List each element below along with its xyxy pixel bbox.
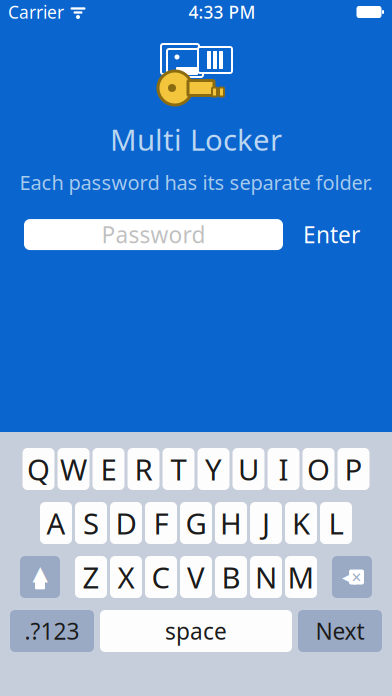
button[interactable]: M xyxy=(285,556,317,598)
button[interactable]: Z xyxy=(75,556,107,598)
staticText: .?123 xyxy=(24,616,79,646)
staticText: Z xyxy=(82,557,99,596)
staticText: Enter xyxy=(303,219,360,250)
staticText: M xyxy=(287,557,314,596)
button[interactable]: D xyxy=(110,502,142,544)
button[interactable]: H xyxy=(215,502,247,544)
button[interactable]: E xyxy=(92,448,124,490)
button[interactable]: A xyxy=(40,502,72,544)
button[interactable]: Next xyxy=(298,610,382,652)
staticText: R xyxy=(134,449,152,488)
button[interactable]: Enter xyxy=(297,213,366,256)
button[interactable]: T xyxy=(162,448,194,490)
button[interactable]: X xyxy=(110,556,142,598)
staticText: F xyxy=(153,503,168,542)
button[interactable]: Shift xyxy=(20,556,60,598)
staticText: X xyxy=(117,557,134,596)
button[interactable]: U xyxy=(232,448,264,490)
button[interactable]: space xyxy=(100,610,292,652)
button[interactable]: W xyxy=(57,448,89,490)
staticText: C xyxy=(151,557,170,596)
button[interactable]: Delete xyxy=(332,556,372,598)
staticText: Carrier xyxy=(8,0,64,23)
staticText: U xyxy=(238,449,259,488)
button[interactable]: Y xyxy=(197,448,229,490)
staticText: E xyxy=(100,449,116,488)
button[interactable]: I xyxy=(267,448,299,490)
button[interactable]: S xyxy=(75,502,107,544)
button[interactable]: J xyxy=(250,502,282,544)
staticText: Next xyxy=(315,616,364,646)
button[interactable]: P xyxy=(337,448,369,490)
button[interactable]: F xyxy=(145,502,177,544)
staticText: D xyxy=(115,503,136,542)
button[interactable]: C xyxy=(145,556,177,598)
staticText: Password xyxy=(101,219,205,250)
button[interactable]: V xyxy=(180,556,212,598)
staticText: B xyxy=(221,557,240,596)
staticText: K xyxy=(292,503,310,542)
button[interactable]: Q xyxy=(22,448,54,490)
staticText: P xyxy=(344,449,362,488)
staticText: O xyxy=(307,449,330,488)
staticText: Each password has its separate folder. xyxy=(19,169,372,196)
staticText: V xyxy=(187,557,205,596)
staticText: L xyxy=(328,503,343,542)
staticText: I xyxy=(278,449,288,488)
staticText: 4:33 PM xyxy=(188,0,255,23)
button[interactable]: L xyxy=(320,502,352,544)
button[interactable]: G xyxy=(180,502,212,544)
staticText: T xyxy=(170,449,186,488)
staticText: N xyxy=(255,557,277,596)
staticText: J xyxy=(262,503,270,542)
staticText: S xyxy=(83,503,99,542)
button[interactable]: B xyxy=(215,556,247,598)
staticText: A xyxy=(46,503,65,542)
staticText: Y xyxy=(205,449,222,488)
button[interactable]: R xyxy=(127,448,159,490)
staticText: space xyxy=(165,616,227,646)
staticText: Q xyxy=(27,449,50,488)
button[interactable]: .?123 xyxy=(10,610,94,652)
staticText: ▲ xyxy=(32,562,47,584)
button[interactable]: N xyxy=(250,556,282,598)
button[interactable]: O xyxy=(302,448,334,490)
button[interactable]: K xyxy=(285,502,317,544)
staticText: G xyxy=(185,503,206,542)
staticText: ◀ xyxy=(342,567,355,587)
staticText: Multi Locker xyxy=(110,120,282,159)
button[interactable]: Password xyxy=(24,219,283,250)
staticText: × xyxy=(351,565,361,588)
staticText: W xyxy=(60,449,87,488)
staticText: H xyxy=(220,503,242,542)
